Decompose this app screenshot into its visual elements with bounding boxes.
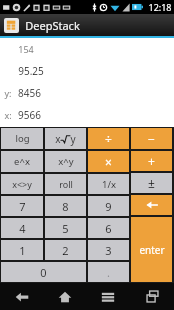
staticText: 9566 xyxy=(18,108,41,122)
button[interactable]: x<>y xyxy=(1,174,43,194)
button[interactable]: e^x xyxy=(1,151,43,172)
button[interactable]: Back xyxy=(0,283,43,310)
staticText: e^x xyxy=(14,155,30,168)
button[interactable]: 2 xyxy=(45,240,86,260)
staticText: x: xyxy=(4,109,12,121)
other: Backspace xyxy=(145,200,159,210)
button[interactable]: + xyxy=(131,151,172,171)
button[interactable]: Recent apps xyxy=(130,283,174,310)
button[interactable]: ÷ xyxy=(88,128,129,149)
staticText: 7 xyxy=(19,199,26,214)
button[interactable]: 1 xyxy=(1,240,43,260)
staticText: 1 xyxy=(19,243,26,258)
staticText: 154 xyxy=(18,43,34,55)
button[interactable]: Backspace xyxy=(131,195,172,215)
button[interactable]: × xyxy=(88,151,129,172)
staticText: x<>y xyxy=(12,178,32,190)
staticText: 8456 xyxy=(18,86,41,100)
staticText: DeepStack xyxy=(25,18,80,33)
staticText: ± xyxy=(148,175,155,191)
button[interactable]: 8 xyxy=(45,196,86,216)
staticText: roll xyxy=(59,178,73,190)
staticText: log xyxy=(15,132,30,145)
button[interactable]: 5 xyxy=(45,218,86,238)
staticText: 6 xyxy=(105,221,112,236)
staticText: y xyxy=(70,132,76,146)
staticText: − xyxy=(148,131,155,147)
staticText: x^y xyxy=(58,155,74,168)
button[interactable]: − xyxy=(131,128,172,149)
button[interactable]: x xyxy=(45,128,86,149)
button[interactable]: 4 xyxy=(1,218,43,238)
staticText: 5 xyxy=(62,221,69,236)
button[interactable]: 6 xyxy=(88,218,129,238)
staticText: 95.25 xyxy=(18,64,44,78)
button[interactable]: ± xyxy=(131,173,172,193)
staticText: + xyxy=(148,153,155,169)
button[interactable]: Home xyxy=(43,283,86,310)
button[interactable]: x^y xyxy=(45,151,86,172)
staticText: ÷ xyxy=(105,131,112,147)
staticText: × xyxy=(105,154,112,170)
staticText: 1/x xyxy=(102,178,116,191)
button[interactable]: Menu xyxy=(86,283,130,310)
button[interactable]: log xyxy=(1,128,43,149)
button[interactable]: roll xyxy=(45,174,86,194)
staticText: enter xyxy=(139,243,165,257)
staticText: . xyxy=(107,265,110,280)
button[interactable]: 7 xyxy=(1,196,43,216)
button[interactable]: enter xyxy=(131,217,172,282)
staticText: y: xyxy=(4,87,12,99)
staticText: 8 xyxy=(62,199,69,214)
staticText: 3 xyxy=(105,243,112,258)
staticText: 4 xyxy=(19,221,26,236)
staticText: 9 xyxy=(105,199,112,214)
staticText: 12:18 xyxy=(148,1,172,13)
staticText: x xyxy=(55,132,61,146)
button[interactable]: 9 xyxy=(88,196,129,216)
staticText: 0 xyxy=(40,265,47,280)
button[interactable]: 3 xyxy=(88,240,129,260)
button[interactable]: 0 xyxy=(1,262,86,282)
staticText: 2 xyxy=(62,243,69,258)
button[interactable]: 1/x xyxy=(88,174,129,194)
